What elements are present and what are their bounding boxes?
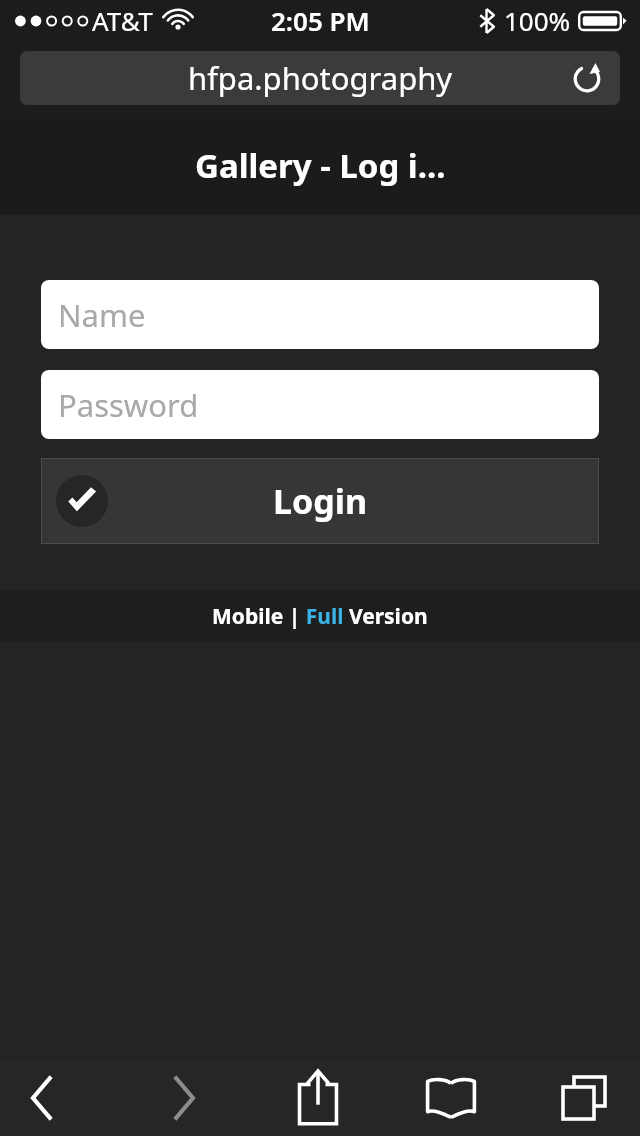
staticText: Password bbox=[58, 384, 199, 426]
staticText: 2:05 PM bbox=[271, 3, 370, 38]
button[interactable]: Reload bbox=[566, 57, 608, 99]
button[interactable]: Password bbox=[41, 370, 599, 439]
button[interactable]: Mobile | Full Version bbox=[212, 602, 428, 631]
staticText: Gallery - Log i... bbox=[195, 143, 446, 188]
button[interactable]: hfpa.photography bbox=[20, 51, 620, 105]
button[interactable]: Name bbox=[41, 280, 599, 349]
staticText: hfpa.photography bbox=[188, 57, 453, 99]
button[interactable]: Login bbox=[41, 458, 599, 544]
button[interactable]: Share bbox=[286, 1060, 350, 1136]
staticText: 100% bbox=[504, 3, 571, 38]
staticText: AT&T bbox=[92, 3, 153, 38]
staticText: Name bbox=[58, 294, 146, 336]
staticText: Login bbox=[273, 478, 368, 524]
button[interactable]: Forward bbox=[152, 1060, 216, 1136]
button[interactable]: Bookmarks bbox=[419, 1060, 483, 1136]
button[interactable]: Tabs bbox=[552, 1060, 616, 1136]
button[interactable]: Back bbox=[10, 1060, 74, 1136]
